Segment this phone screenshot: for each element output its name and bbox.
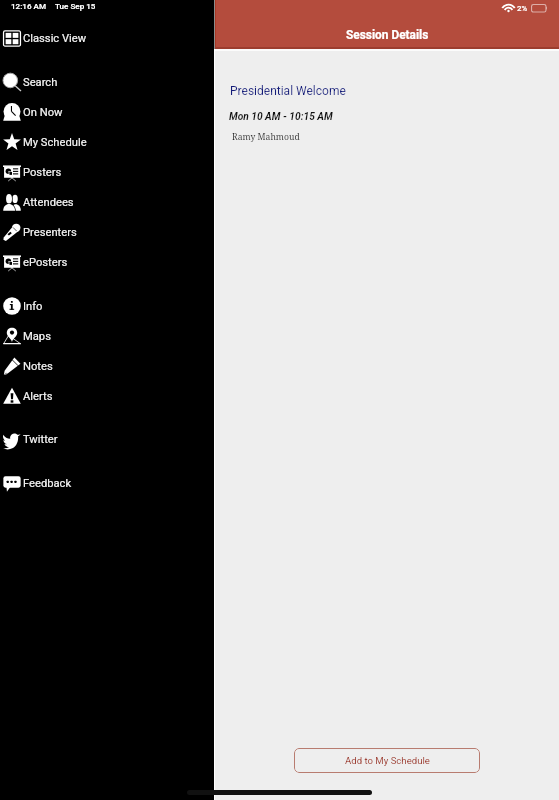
staticText: Tue Sep 15	[55, 1, 96, 10]
button[interactable]: Presenters	[0, 217, 214, 247]
staticText: Attendees	[23, 196, 74, 209]
button[interactable]: On Now	[0, 97, 214, 127]
button[interactable]: Notes	[0, 351, 214, 381]
button[interactable]: My Schedule	[0, 127, 214, 157]
staticText: Maps	[23, 330, 51, 343]
staticText: 12:16 AM	[11, 1, 46, 10]
button[interactable]: ePosters	[0, 247, 214, 277]
staticText: Classic View	[23, 32, 87, 45]
staticText: Posters	[23, 166, 62, 179]
staticText: Feedback	[23, 477, 72, 490]
button[interactable]: Info	[0, 291, 214, 321]
staticText: Ramy Mahmoud	[232, 131, 300, 143]
staticText: Info	[23, 300, 43, 313]
button[interactable]: Posters	[0, 157, 214, 187]
staticText: 2%	[517, 4, 528, 13]
staticText: Notes	[23, 360, 53, 373]
button[interactable]: Add to My Schedule	[294, 748, 480, 773]
button[interactable]: Maps	[0, 321, 214, 351]
staticText: ePosters	[23, 256, 68, 269]
button[interactable]: Classic View	[0, 23, 214, 53]
staticText: Twitter	[23, 433, 58, 446]
button[interactable]: Alerts	[0, 381, 214, 411]
staticText: Session Details	[346, 28, 429, 42]
staticText: Alerts	[23, 390, 53, 403]
staticText: My Schedule	[23, 136, 87, 149]
button[interactable]: Feedback	[0, 468, 214, 498]
button[interactable]: Twitter	[0, 424, 214, 454]
button[interactable]: Search	[0, 67, 214, 97]
staticText: Mon 10 AM - 10:15 AM	[229, 111, 333, 123]
staticText: Presidential Welcome	[230, 84, 346, 98]
staticText: Search	[23, 76, 58, 89]
staticText: On Now	[23, 106, 63, 119]
staticText: Add to My Schedule	[345, 755, 430, 766]
staticText: Presenters	[23, 226, 77, 239]
button[interactable]: Attendees	[0, 187, 214, 217]
